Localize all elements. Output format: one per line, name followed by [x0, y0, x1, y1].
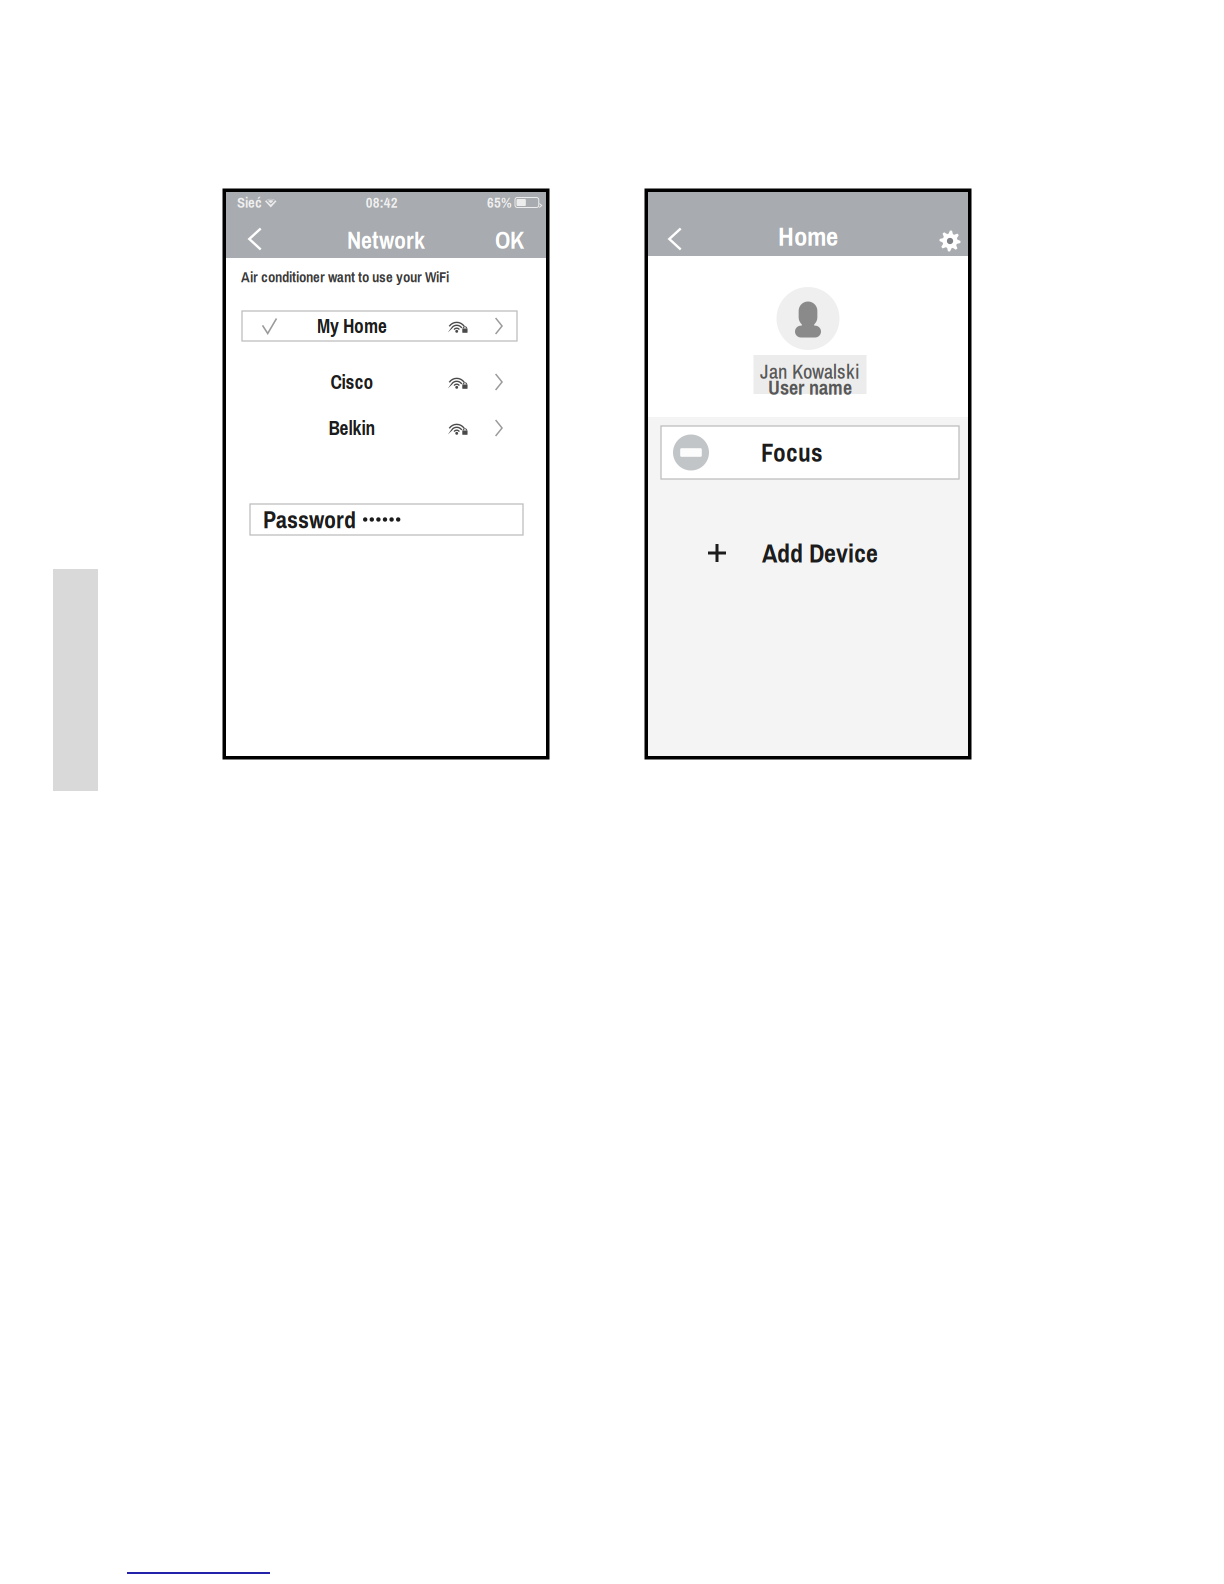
- button[interactable]: Back: [235, 222, 275, 256]
- staticText: Network: [347, 224, 425, 256]
- staticText: Home: [778, 218, 838, 254]
- staticText: Add Device: [762, 535, 878, 570]
- staticText: Belkin: [328, 415, 375, 441]
- button[interactable]: Focus: [661, 426, 959, 479]
- staticText: Air conditioner want to use your WiFi: [241, 267, 449, 287]
- button[interactable]: My Home: [242, 311, 517, 341]
- button[interactable]: Settings: [930, 221, 970, 261]
- button[interactable]: Back: [655, 221, 695, 257]
- button[interactable]: Cisco: [242, 367, 517, 397]
- button[interactable]: Password: [250, 504, 523, 535]
- button[interactable]: Add Device: [657, 531, 957, 575]
- button[interactable]: Belkin: [242, 413, 517, 443]
- staticText: Jan Kowalski: [760, 358, 860, 385]
- staticText: Focus: [761, 435, 823, 469]
- staticText: Sieć: [237, 193, 262, 212]
- staticText: Password: [263, 503, 356, 536]
- staticText: OK: [495, 224, 524, 256]
- staticText: Cisco: [330, 369, 373, 395]
- staticText: My Home: [317, 313, 387, 339]
- button[interactable]: OK: [478, 223, 524, 257]
- staticText: 65%: [487, 193, 512, 212]
- staticText: 08:42: [366, 193, 398, 212]
- staticText: User name: [768, 374, 852, 401]
